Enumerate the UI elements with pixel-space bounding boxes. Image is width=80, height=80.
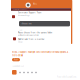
- staticText: Community Support Team: [18, 11, 42, 14]
- staticText: reply: [19, 29, 23, 31]
- staticText: Please choose from the options below: [18, 32, 52, 34]
- staticText: choose one: [21, 23, 31, 25]
- staticText: Reply: [14, 59, 18, 61]
- staticText: about a week ago: [18, 15, 30, 16]
- staticText: community > support: [13, 9, 27, 10]
- button[interactable]: Compose: [0, 0, 80, 80]
- staticText: reply to this thread: [12, 65, 24, 67]
- staticText: 2d · ago: [18, 41, 23, 43]
- staticText: https://support.example.com/community/th…: [12, 51, 70, 53]
- staticText: and let us know how we can help: [18, 34, 39, 36]
- button[interactable]: Reply: [0, 0, 80, 80]
- staticText: more-details: [12, 54, 23, 57]
- staticText: Helpful reply from a member: [18, 38, 45, 40]
- staticText: Menu: [33, 3, 37, 5]
- button[interactable]: Home: [0, 0, 80, 80]
- staticText: Powered by Example Community: [57, 76, 77, 78]
- button[interactable]: More options: [0, 0, 80, 80]
